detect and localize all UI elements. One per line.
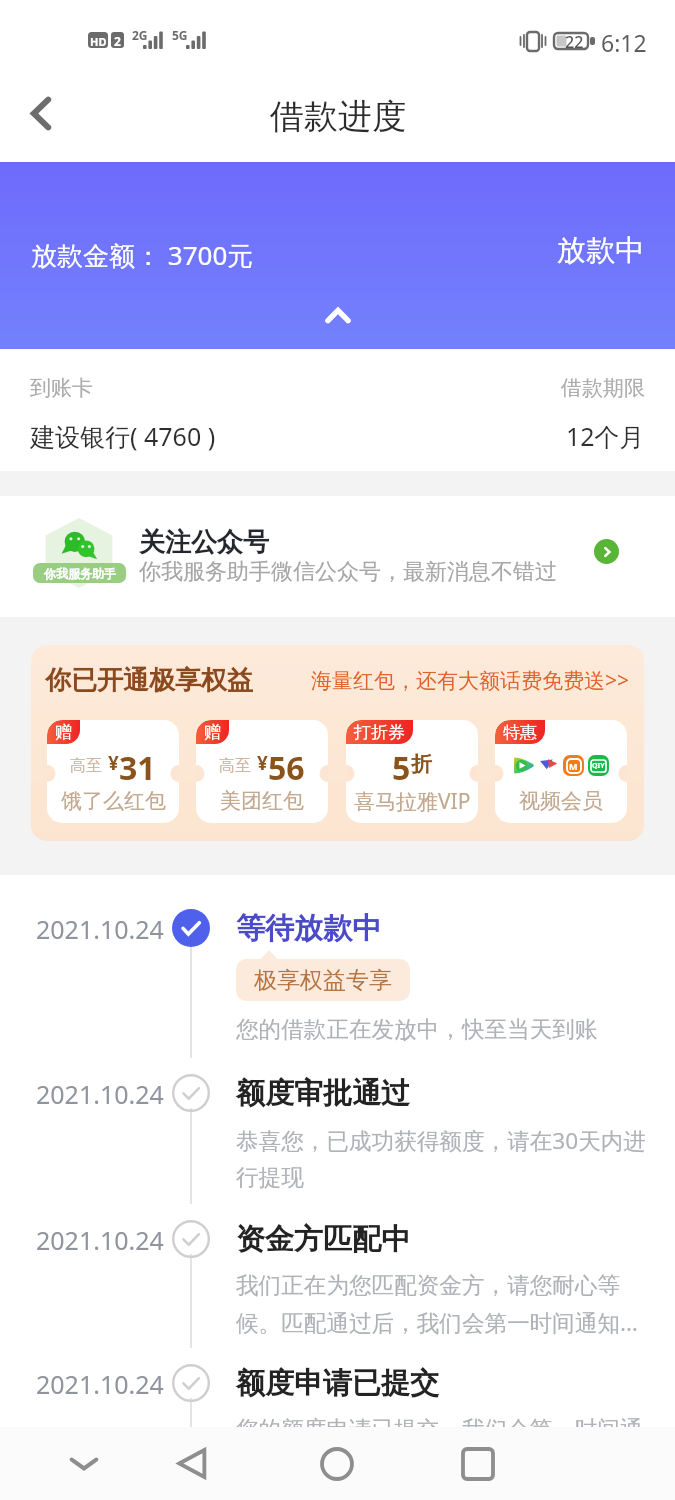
button[interactable]: Back bbox=[6, 91, 76, 135]
staticText: 31 bbox=[119, 746, 156, 780]
button[interactable]: 2021.10.24 bbox=[0, 1356, 675, 1427]
button[interactable]: Hide keyboard bbox=[54, 1427, 114, 1500]
button[interactable]: 你已开通极享权益 bbox=[31, 645, 644, 841]
staticText: 恭喜您，已成功获得额度，请在30天内进行提现 bbox=[236, 1125, 649, 1192]
staticText: 12个月 bbox=[566, 419, 645, 453]
staticText: 视频会员 bbox=[519, 788, 603, 814]
staticText: 赠 bbox=[204, 722, 221, 743]
staticText: 喜马拉雅VIP bbox=[354, 787, 471, 816]
staticText: 放款中 bbox=[557, 232, 644, 269]
staticText: QIY bbox=[592, 761, 605, 771]
staticText: 你我服务助手 bbox=[44, 566, 116, 581]
staticText: 高至 bbox=[70, 756, 102, 776]
staticText: 你我服务助手微信公众号，最新消息不错过 bbox=[139, 558, 557, 586]
staticText: 2021.10.24 bbox=[36, 912, 164, 946]
staticText: 高至 bbox=[219, 756, 251, 776]
staticText: 赠 bbox=[55, 722, 72, 743]
button[interactable]: 赠 bbox=[196, 720, 328, 823]
staticText: 借款进度 bbox=[270, 95, 406, 138]
button[interactable]: 赠 bbox=[47, 720, 179, 823]
staticText: 建设银行( 4760 ) bbox=[30, 419, 216, 453]
staticText: 2021.10.24 bbox=[36, 1223, 164, 1257]
button[interactable]: Back bbox=[157, 1427, 227, 1500]
staticText: 你已开通极享权益 bbox=[45, 664, 253, 697]
button[interactable]: Recents bbox=[443, 1427, 513, 1500]
staticText: 6:12 bbox=[601, 27, 647, 58]
staticText: ¥ bbox=[108, 750, 119, 776]
staticText: 您的借款正在发放中，快至当天到账 bbox=[236, 1015, 598, 1043]
button[interactable]: Open bbox=[594, 539, 619, 564]
staticText: 借款期限 bbox=[561, 375, 645, 401]
staticText: 5 bbox=[392, 746, 411, 780]
staticText: 饿了么红包 bbox=[61, 788, 166, 814]
staticText: 折 bbox=[411, 751, 432, 777]
staticText: 2021.10.24 bbox=[36, 1367, 164, 1401]
staticText: HD bbox=[90, 34, 107, 49]
staticText: 特惠 bbox=[503, 722, 537, 743]
staticText: ¥ bbox=[257, 750, 268, 776]
staticText: 资金方匹配中 bbox=[236, 1221, 410, 1258]
staticText: 等待放款中 bbox=[236, 910, 381, 947]
button[interactable]: 2021.10.24 bbox=[0, 1066, 675, 1212]
staticText: M bbox=[569, 760, 578, 772]
button[interactable]: 打折券 bbox=[346, 720, 478, 823]
staticText: 56 bbox=[268, 746, 305, 780]
button[interactable]: Collapse bbox=[316, 300, 360, 330]
staticText: 我们正在为您匹配资金方，请您耐心等候。匹配通过后，我们会第一时间通知… bbox=[236, 1271, 649, 1337]
button[interactable]: Home bbox=[302, 1427, 372, 1500]
staticText: 2021.10.24 bbox=[36, 1077, 164, 1111]
staticText: 海量红包，还有大额话费免费送>> bbox=[311, 666, 630, 695]
staticText: 2G bbox=[132, 27, 148, 43]
button[interactable]: 特惠 bbox=[495, 720, 627, 823]
button[interactable]: 放款金额： 3700元 bbox=[0, 162, 675, 349]
staticText: 放款金额： 3700元 bbox=[31, 237, 254, 273]
staticText: 22 bbox=[565, 31, 584, 53]
staticText: 极享权益专享 bbox=[254, 966, 392, 995]
staticText: 关注公众号 bbox=[139, 526, 269, 559]
button[interactable]: 2021.10.24 bbox=[0, 901, 675, 1066]
button[interactable]: 你我服务助手 bbox=[0, 496, 675, 617]
staticText: 您的额度申请已提交，我们会第一时间通知您 bbox=[236, 1415, 649, 1427]
staticText: 额度申请已提交 bbox=[236, 1365, 439, 1402]
staticText: 额度审批通过 bbox=[236, 1075, 410, 1112]
button[interactable]: 2021.10.24 bbox=[0, 1212, 675, 1356]
staticText: 2 bbox=[114, 33, 121, 49]
staticText: 到账卡 bbox=[30, 375, 93, 401]
staticText: 5G bbox=[172, 27, 188, 43]
staticText: 美团红包 bbox=[220, 788, 304, 814]
staticText: 打折券 bbox=[354, 722, 405, 743]
